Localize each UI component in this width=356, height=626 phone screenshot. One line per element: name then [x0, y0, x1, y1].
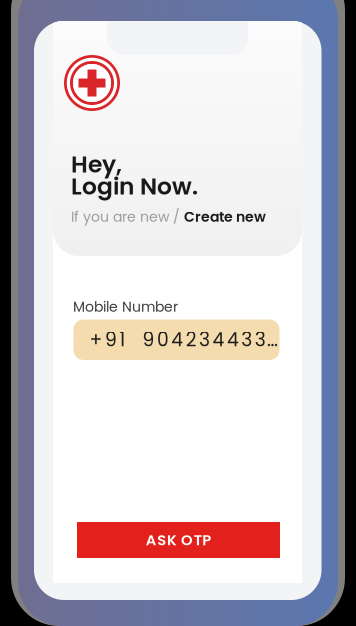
- button[interactable]: ASK OTP: [77, 522, 280, 558]
- button[interactable]: Create new: [184, 207, 266, 227]
- staticText: +91 9042344330: [89, 327, 280, 353]
- staticText: Login Now.: [71, 170, 198, 203]
- staticText: ASK OTP: [146, 530, 211, 550]
- button[interactable]: +91 9042344330: [73, 319, 279, 360]
- staticText: Hey,: [71, 148, 122, 181]
- staticText: Mobile Number: [73, 297, 178, 317]
- staticText: If you are new /: [71, 207, 184, 227]
- staticText: Create new: [184, 207, 266, 227]
